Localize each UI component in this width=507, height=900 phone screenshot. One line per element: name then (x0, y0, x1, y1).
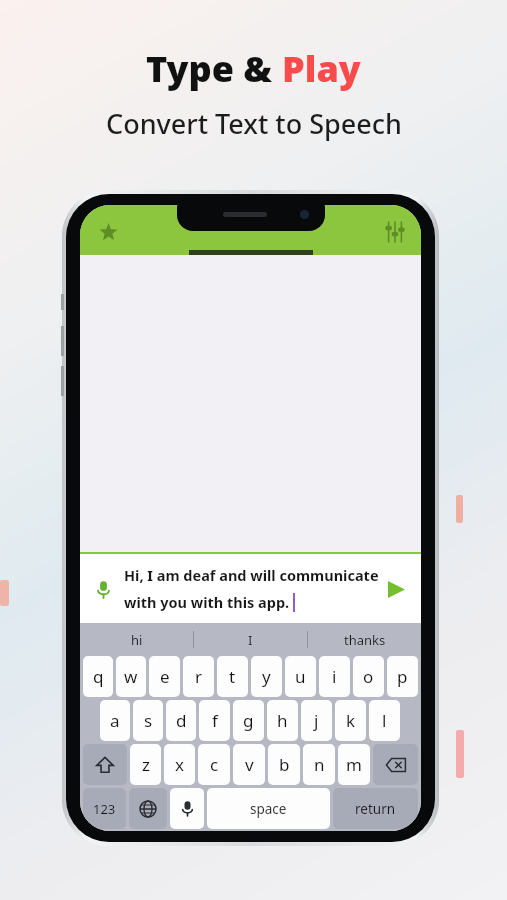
button[interactable]: Emoji (129, 788, 167, 829)
button[interactable]: y (251, 656, 282, 697)
staticText: r (195, 665, 203, 688)
button[interactable]: hi (80, 623, 193, 656)
button[interactable]: q (83, 656, 113, 697)
staticText: t (229, 665, 236, 688)
button[interactable]: b (268, 744, 300, 785)
button[interactable]: a (100, 700, 130, 741)
staticText: k (346, 709, 356, 732)
button[interactable]: j (301, 700, 332, 741)
button[interactable]: Backspace (373, 744, 418, 785)
staticText: l (382, 709, 387, 732)
staticText: o (363, 665, 374, 688)
staticText: return (355, 800, 396, 818)
button[interactable]: v (233, 744, 265, 785)
staticText: v (245, 753, 254, 776)
staticText: j (314, 709, 319, 732)
staticText: a (110, 709, 120, 732)
button[interactable]: c (198, 744, 230, 785)
button[interactable]: u (285, 656, 316, 697)
staticText: u (295, 665, 306, 688)
staticText: Play (282, 44, 361, 93)
staticText: w (124, 665, 138, 688)
button[interactable]: Favorites (90, 214, 126, 250)
button[interactable]: t (217, 656, 248, 697)
button[interactable]: Play (379, 572, 413, 606)
button[interactable]: o (353, 656, 384, 697)
staticText: q (93, 665, 104, 688)
staticText: p (397, 665, 408, 688)
staticText: Type & (146, 44, 282, 93)
button[interactable]: h (267, 700, 298, 741)
button[interactable]: f (199, 700, 230, 741)
button[interactable]: i (319, 656, 350, 697)
staticText: Hi, I am deaf and will communicate (124, 565, 379, 585)
staticText: hi (131, 631, 143, 649)
button[interactable]: I (194, 623, 307, 656)
button[interactable]: Voice input (88, 574, 118, 604)
button[interactable]: s (133, 700, 163, 741)
button[interactable]: Dictate (170, 788, 204, 829)
staticText: y (262, 665, 271, 688)
button[interactable]: thanks (308, 623, 421, 656)
staticText: 123 (93, 800, 116, 818)
staticText: g (243, 709, 254, 732)
button[interactable]: e (149, 656, 180, 697)
button[interactable]: space (207, 788, 330, 829)
staticText: with you with this app. (124, 592, 290, 612)
staticText: n (314, 753, 325, 776)
staticText: Convert Text to Speech (106, 105, 402, 142)
staticText: space (250, 800, 287, 818)
button[interactable]: r (183, 656, 214, 697)
staticText: b (279, 753, 290, 776)
staticText: f (212, 709, 218, 732)
staticText: s (144, 709, 153, 732)
button[interactable]: d (166, 700, 196, 741)
button[interactable]: p (387, 656, 418, 697)
button[interactable]: Settings (377, 214, 413, 250)
button[interactable]: Numbers (83, 788, 126, 829)
button[interactable]: k (335, 700, 366, 741)
staticText: I (248, 631, 253, 649)
button[interactable]: w (116, 656, 146, 697)
button[interactable]: z (130, 744, 161, 785)
staticText: x (175, 753, 184, 776)
button[interactable]: m (338, 744, 370, 785)
button[interactable]: g (233, 700, 264, 741)
staticText: d (176, 709, 187, 732)
button[interactable]: Shift (83, 744, 127, 785)
button[interactable]: x (164, 744, 195, 785)
button[interactable]: l (369, 700, 400, 741)
staticText: m (346, 753, 362, 776)
staticText: e (160, 665, 170, 688)
staticText: thanks (344, 631, 386, 649)
button[interactable]: n (303, 744, 335, 785)
staticText: c (210, 753, 219, 776)
staticText: i (332, 665, 337, 688)
staticText: h (277, 709, 288, 732)
staticText: z (142, 753, 150, 776)
button[interactable]: return (333, 788, 418, 829)
